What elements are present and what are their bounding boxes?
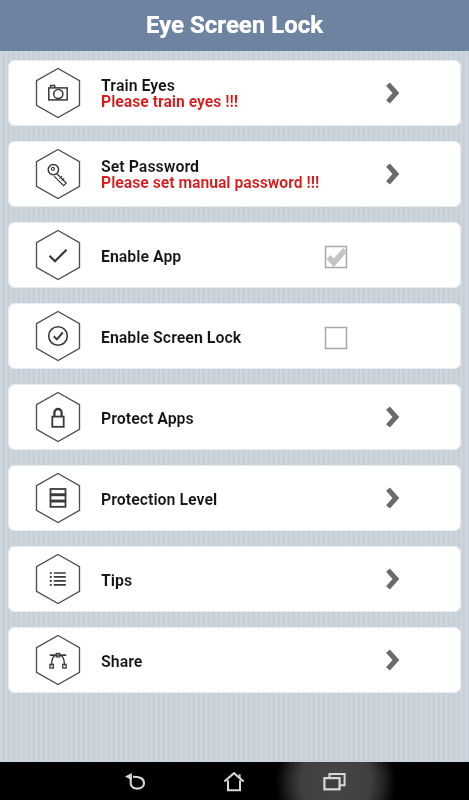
button[interactable]: Enable App — [8, 222, 461, 288]
staticText: Set Password — [101, 157, 200, 176]
staticText: Train Eyes — [101, 76, 175, 95]
staticText: Enable Screen Lock — [101, 328, 242, 347]
button[interactable]: Home — [184, 762, 284, 800]
button[interactable]: Tips — [8, 546, 461, 612]
button[interactable]: Protect Apps — [8, 384, 461, 450]
staticText: Protection Level — [101, 490, 218, 509]
button[interactable]: Enable Screen Lock — [8, 303, 461, 369]
staticText: Eye Screen Lock — [146, 11, 324, 39]
button[interactable]: Recent apps — [284, 762, 384, 800]
button[interactable]: Train Eyes — [8, 60, 461, 126]
staticText: Please train eyes !!! — [101, 92, 239, 110]
staticText: Enable App — [101, 247, 182, 266]
staticText: Please set manual password !!! — [101, 173, 320, 191]
button[interactable]: Protection Level — [8, 465, 461, 531]
staticText: Tips — [101, 571, 133, 590]
button[interactable]: Back — [85, 762, 184, 800]
button[interactable]: Set Password — [8, 141, 461, 207]
staticText: Share — [101, 652, 143, 671]
button[interactable]: Share — [8, 627, 461, 693]
staticText: Protect Apps — [101, 409, 194, 428]
